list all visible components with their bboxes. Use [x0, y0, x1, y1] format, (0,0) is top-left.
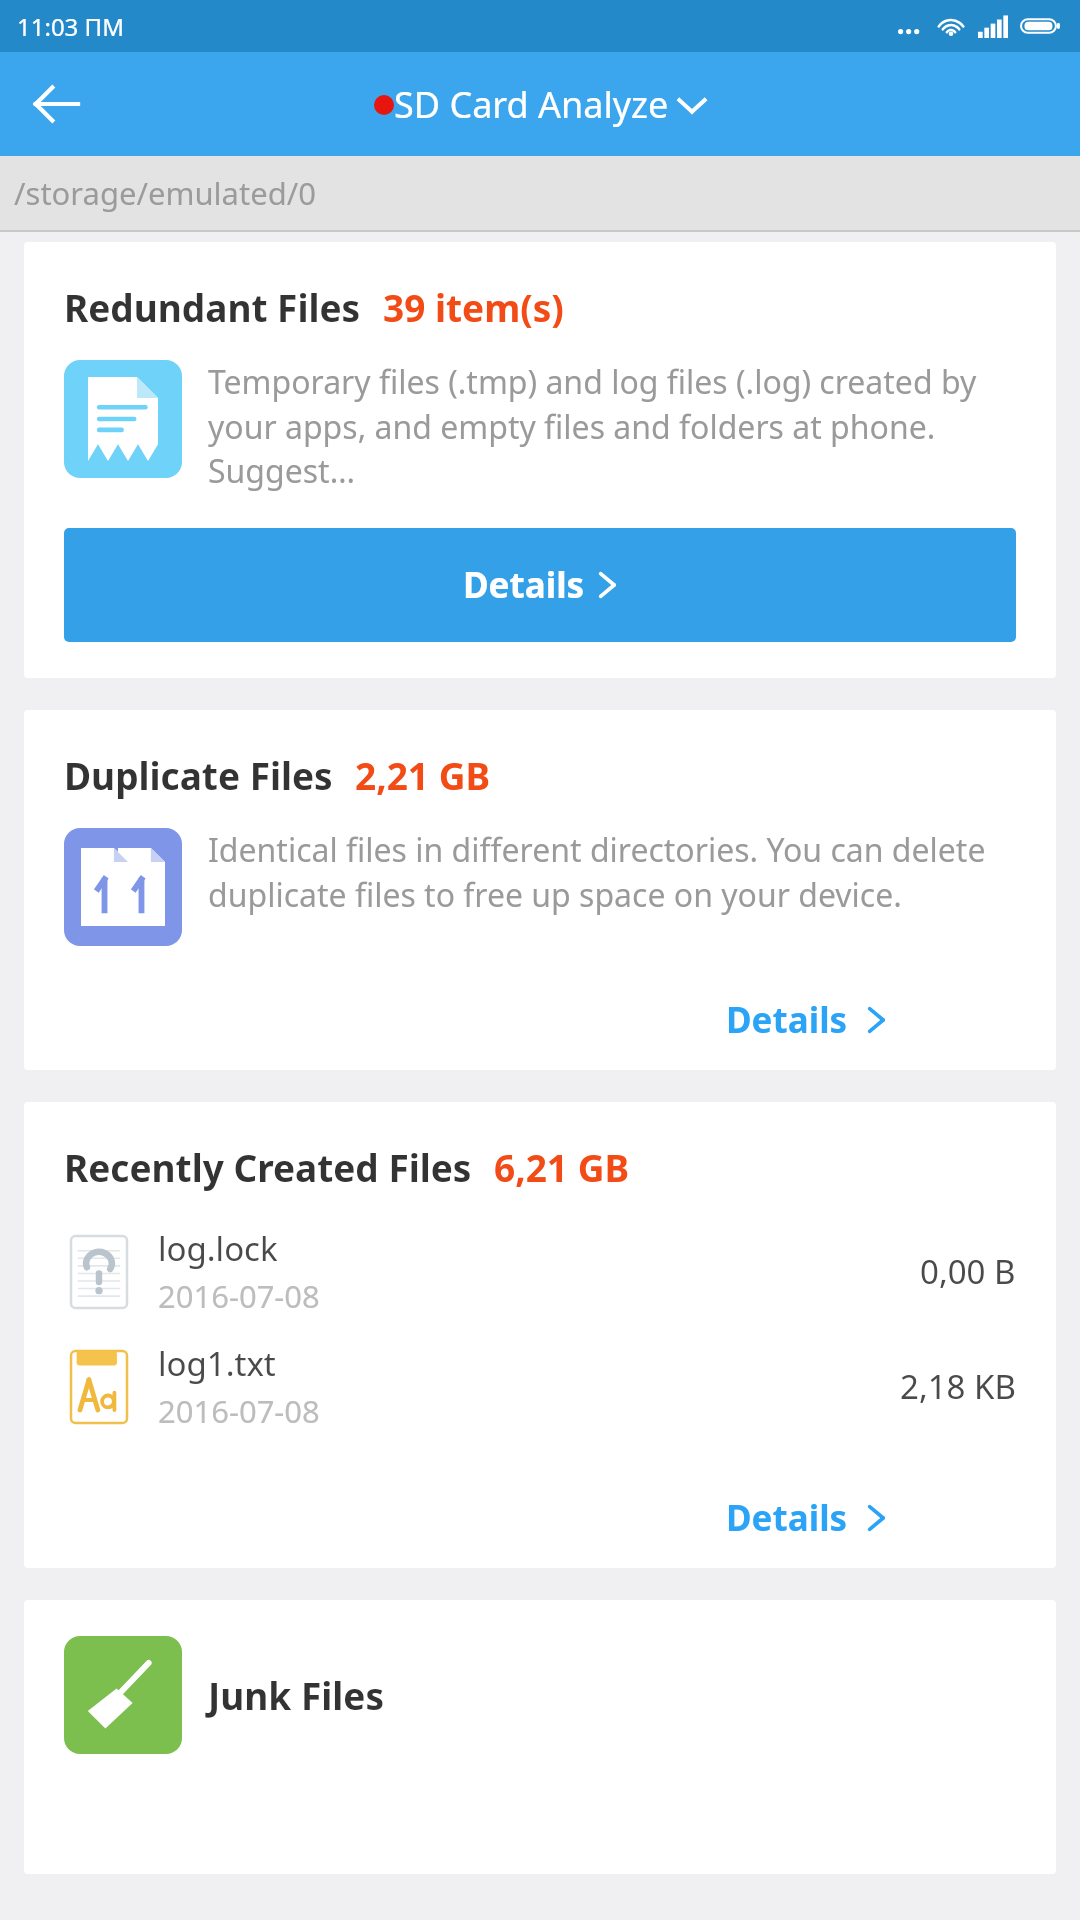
button[interactable]: log1.txt	[24, 1329, 1056, 1444]
staticText: Redundant Files	[64, 282, 361, 332]
button[interactable]: Details	[64, 528, 1016, 642]
staticText: SD Card Analyze	[394, 80, 669, 129]
staticText: log1.txt	[158, 1341, 276, 1386]
staticText: 2016-07-08	[158, 1275, 320, 1317]
button[interactable]: log.lock	[24, 1214, 1056, 1329]
staticText: 11:03 ПМ	[17, 10, 124, 43]
staticText: Temporary files (.tmp) and log files (.l…	[208, 360, 1022, 492]
button[interactable]: Details	[596, 1468, 1016, 1568]
staticText: Junk Files	[208, 1670, 384, 1720]
button[interactable]: Details	[596, 970, 1016, 1070]
button[interactable]: SD Card Analyze	[374, 80, 707, 129]
staticText: 6,21 GB	[494, 1142, 630, 1192]
staticText: 0,00 B	[920, 1249, 1016, 1294]
staticText: Recently Created Files	[64, 1142, 472, 1192]
button[interactable]: /storage/emulated/0	[0, 156, 1080, 230]
staticText: Details	[463, 561, 585, 609]
button[interactable]: Back	[22, 70, 90, 138]
staticText: 2016-07-08	[158, 1390, 320, 1432]
staticText: log.lock	[158, 1226, 278, 1271]
staticText: Details	[726, 996, 848, 1044]
staticText: /storage/emulated/0	[14, 172, 317, 214]
staticText: 39 item(s)	[383, 282, 564, 332]
staticText: Duplicate Files	[64, 750, 333, 800]
staticText: Identical files in different directories…	[208, 828, 1022, 916]
staticText: Details	[726, 1494, 848, 1542]
staticText: 2,21 GB	[355, 750, 491, 800]
staticText: 2,18 KB	[900, 1364, 1016, 1409]
